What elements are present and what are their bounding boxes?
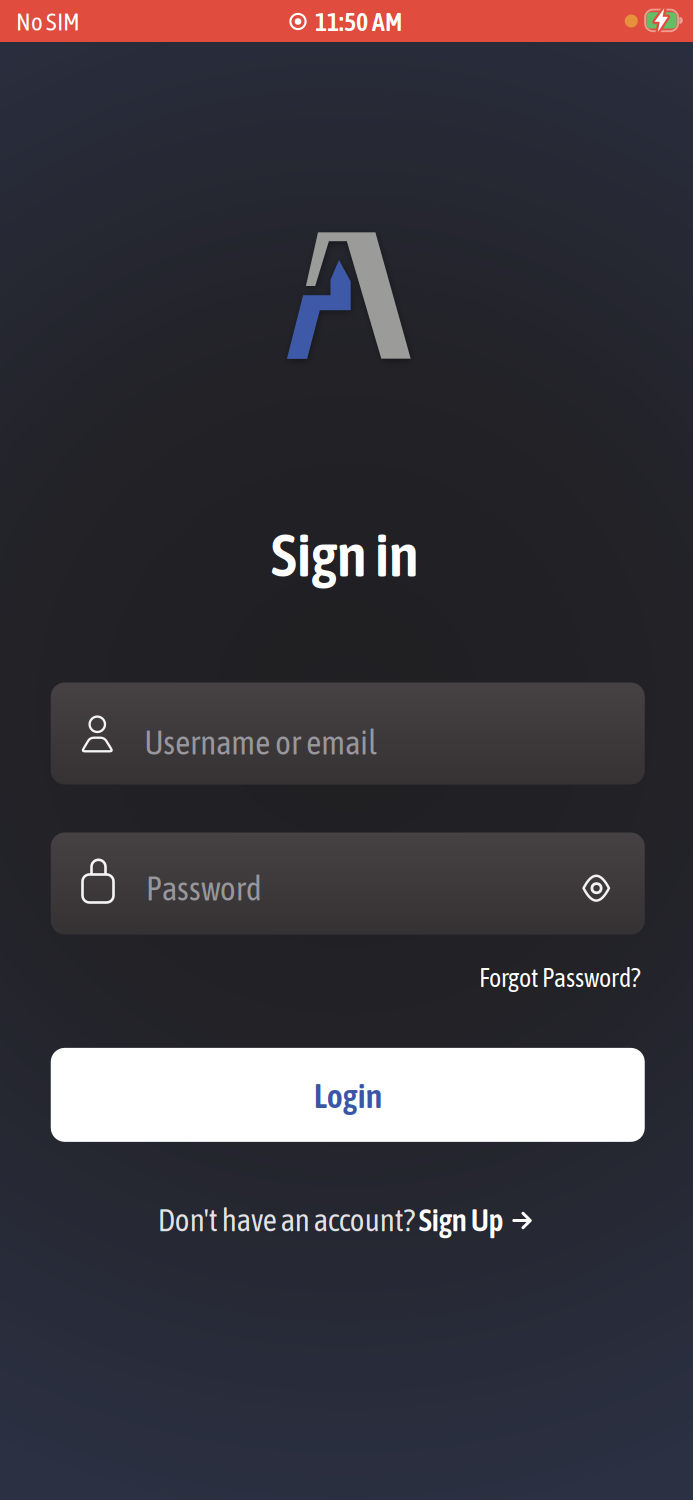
button[interactable]: Don't have an account? [158,1202,534,1238]
button[interactable]: Login [51,1048,645,1142]
staticText: Login [314,1076,382,1115]
staticText: Don't have an account? [158,1202,419,1238]
staticText: No SIM [16,7,80,36]
staticText: Forgot Password? [479,963,640,992]
staticText: Sign in [271,519,419,589]
button[interactable]: Username or email [51,682,645,784]
staticText: Sign Up [419,1202,504,1238]
button[interactable]: Password [51,832,645,934]
staticText: 11:50 AM [315,7,402,36]
button[interactable]: Forgot Password? [479,963,640,992]
staticText: Password [146,870,262,907]
button[interactable]: Show password [571,863,621,913]
staticText: Username or email [144,724,377,761]
